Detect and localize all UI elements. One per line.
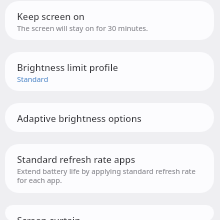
staticText: Standard refresh rate apps: [17, 153, 136, 166]
button[interactable]: Screen curtain: [5, 205, 214, 220]
staticText: Extend battery life by applying standard…: [17, 166, 207, 185]
staticText: Keep screen on: [17, 10, 85, 23]
staticText: Adaptive brightness options: [17, 112, 142, 125]
staticText: Screen curtain: [17, 214, 81, 220]
staticText: The screen will stay on for 30 minutes.: [17, 23, 149, 33]
button[interactable]: Brightness limit profile: [5, 52, 214, 91]
button[interactable]: Keep screen on: [5, 1, 214, 40]
staticText: Brightness limit profile: [17, 61, 118, 74]
button[interactable]: Standard refresh rate apps: [5, 144, 214, 193]
staticText: Standard: [17, 74, 49, 84]
button[interactable]: Adaptive brightness options: [5, 103, 214, 132]
